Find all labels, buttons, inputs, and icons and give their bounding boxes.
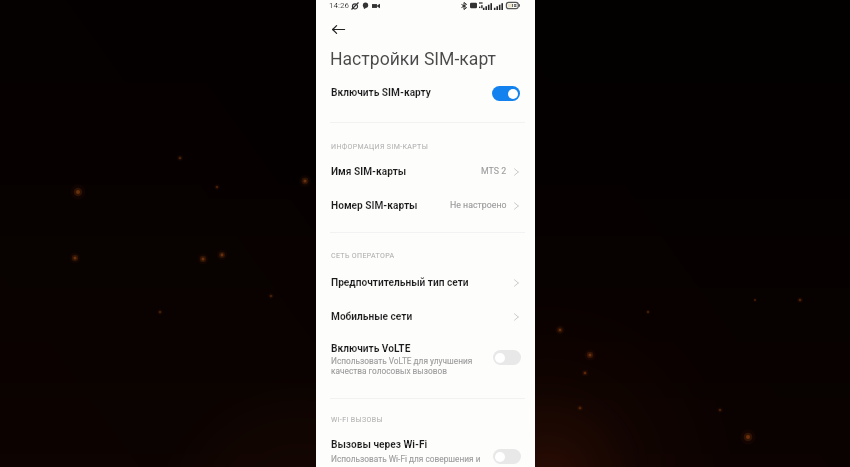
button[interactable]: Номер SIM-карты [316,189,535,221]
staticText: Вызовы через Wi-Fi [331,439,428,451]
button[interactable]: Мобильные сети [316,301,535,333]
staticText: MTS 2 [481,166,507,176]
staticText: 14:26 [329,1,349,10]
button[interactable]: Enable [493,449,521,464]
staticText: качества голосовых вызовов [331,366,447,376]
staticText: Не настроено [450,200,507,210]
staticText: Включить SIM-карту [331,87,431,99]
staticText: Настройки SIM-карт [330,49,497,70]
staticText: Использовать VoLTE для улучшения [331,356,473,366]
staticText: Имя SIM-карты [331,166,407,178]
button[interactable]: Enable [493,350,521,365]
button[interactable]: Имя SIM-карты [316,156,535,188]
staticText: ИНФОРМАЦИЯ SIM-КАРТЫ [331,142,429,150]
button[interactable]: Предпочтительный тип сети [316,267,535,299]
button[interactable]: Включить SIM-карту [316,82,535,104]
staticText: СЕТЬ ОПЕРАТОРА [331,251,395,259]
staticText: Номер SIM-карты [331,200,418,212]
staticText: Мобильные сети [331,311,413,323]
button[interactable]: Back [323,16,353,42]
staticText: Предпочтительный тип сети [331,277,469,289]
button[interactable]: Вызовы через Wi-Fi [316,434,535,467]
staticText: Использовать Wi-Fi для совершения и [331,454,481,464]
button[interactable]: Disable [492,86,520,101]
staticText: Включить VoLTE [331,343,411,355]
button[interactable]: Включить VoLTE [316,337,535,381]
staticText: WI-FI ВЫЗОВЫ [331,415,383,423]
